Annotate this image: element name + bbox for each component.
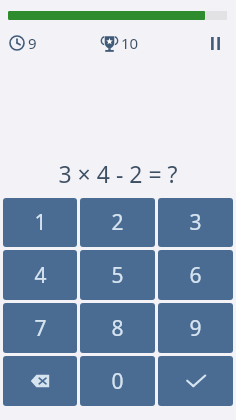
button[interactable]: 7 xyxy=(3,303,77,353)
button[interactable]: 0 xyxy=(80,356,155,406)
staticText: 3 × 4 - 2 = ? xyxy=(58,158,178,189)
staticText: 1 xyxy=(34,208,47,237)
staticText: 5 xyxy=(111,261,124,290)
button[interactable]: 10 xyxy=(101,33,139,53)
button[interactable]: 1 xyxy=(3,198,77,247)
button[interactable]: 2 xyxy=(80,198,155,247)
button[interactable]: Backspace xyxy=(3,356,77,406)
staticText: 6 xyxy=(189,261,202,290)
staticText: 4 xyxy=(34,261,47,290)
button[interactable]: Pause xyxy=(203,31,227,55)
button[interactable]: 4 xyxy=(3,250,77,300)
staticText: 3 xyxy=(189,208,202,237)
staticText: 0 xyxy=(111,367,124,396)
button[interactable]: 6 xyxy=(158,250,233,300)
staticText: 9 xyxy=(28,33,37,53)
button[interactable]: 9 xyxy=(158,303,233,353)
staticText: 2 xyxy=(111,208,124,237)
staticText: 10 xyxy=(121,33,139,53)
button[interactable]: 5 xyxy=(80,250,155,300)
staticText: 8 xyxy=(111,314,124,343)
staticText: 7 xyxy=(34,314,47,343)
button[interactable]: 3 xyxy=(158,198,233,247)
button[interactable]: 9 xyxy=(9,33,37,53)
staticText: 9 xyxy=(189,314,202,343)
button[interactable]: Submit answer xyxy=(158,356,233,406)
button[interactable]: 8 xyxy=(80,303,155,353)
